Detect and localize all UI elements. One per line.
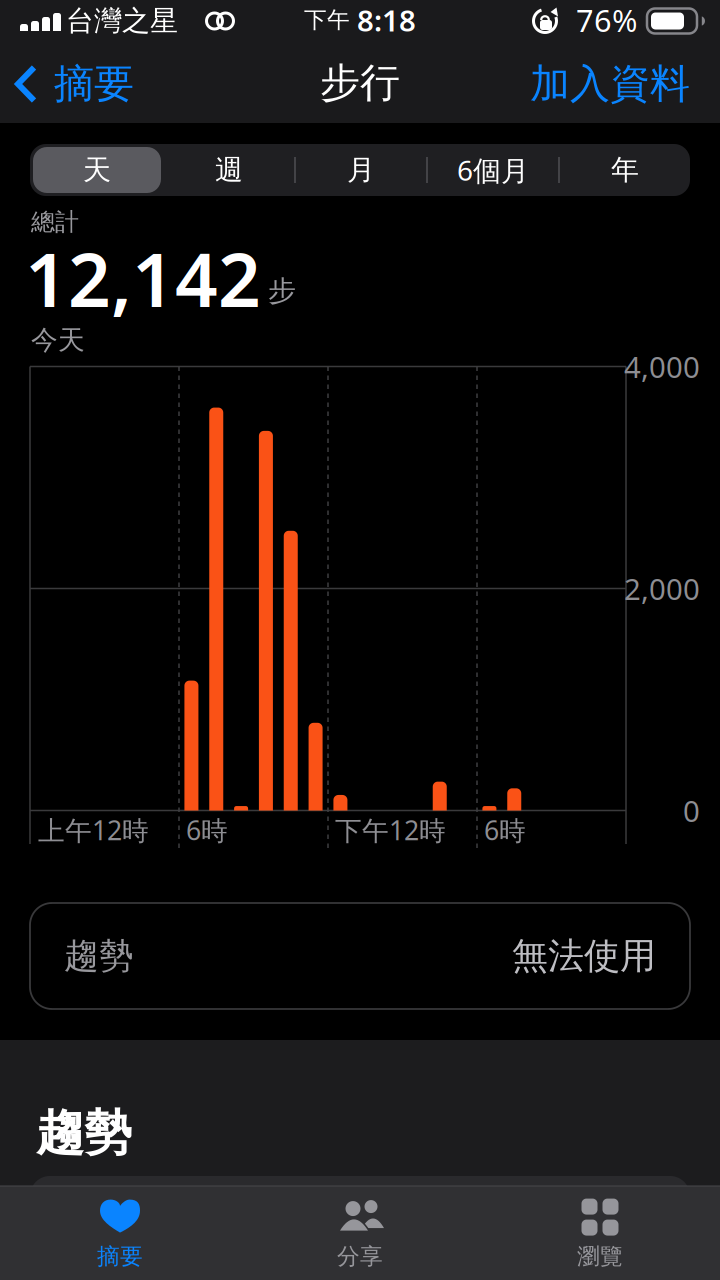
staticText: 天	[83, 153, 111, 187]
button[interactable]: 瀏覽	[520, 1191, 680, 1279]
staticText: 2,000	[624, 569, 700, 608]
staticText: 4,000	[624, 347, 700, 386]
staticText: 摘要	[54, 59, 134, 108]
button[interactable]: 年	[561, 146, 689, 194]
staticText: 年	[611, 153, 639, 187]
staticText: 0	[683, 791, 700, 830]
button[interactable]: 月	[297, 146, 425, 194]
staticText: 上午12時	[38, 812, 149, 848]
button[interactable]: 加入資料	[390, 54, 690, 114]
staticText: 趨勢	[36, 1103, 132, 1162]
staticText: 步行	[320, 58, 400, 107]
staticText: 76%	[576, 0, 637, 40]
staticText: 分享	[337, 1243, 383, 1270]
staticText: 週	[215, 153, 243, 187]
staticText: 瀏覽	[577, 1243, 623, 1270]
staticText: 無法使用	[512, 934, 656, 978]
staticText: 下午	[304, 6, 350, 34]
button[interactable]: 趨勢	[30, 903, 690, 1009]
staticText: 趨勢	[64, 935, 134, 977]
staticText: 今天	[31, 324, 85, 356]
staticText: 下午12時	[335, 812, 446, 848]
staticText: 6時	[186, 812, 228, 848]
staticText: 步	[268, 274, 296, 308]
button[interactable]: 6個月	[429, 146, 557, 194]
staticText: 6個月	[457, 151, 529, 189]
staticText: 台灣之星	[66, 4, 178, 38]
button[interactable]: 週	[165, 146, 293, 194]
staticText: 總計	[31, 207, 79, 237]
button[interactable]: 天	[33, 146, 161, 194]
button[interactable]: 摘要	[14, 54, 314, 114]
staticText: 加入資料	[530, 59, 690, 108]
button[interactable]: 摘要	[40, 1191, 200, 1279]
staticText: 12,142	[25, 228, 261, 328]
staticText: 月	[347, 153, 375, 187]
staticText: 8:18	[357, 0, 416, 39]
staticText: 摘要	[97, 1243, 143, 1270]
button[interactable]: 分享	[280, 1191, 440, 1279]
staticText: 6時	[484, 812, 526, 848]
